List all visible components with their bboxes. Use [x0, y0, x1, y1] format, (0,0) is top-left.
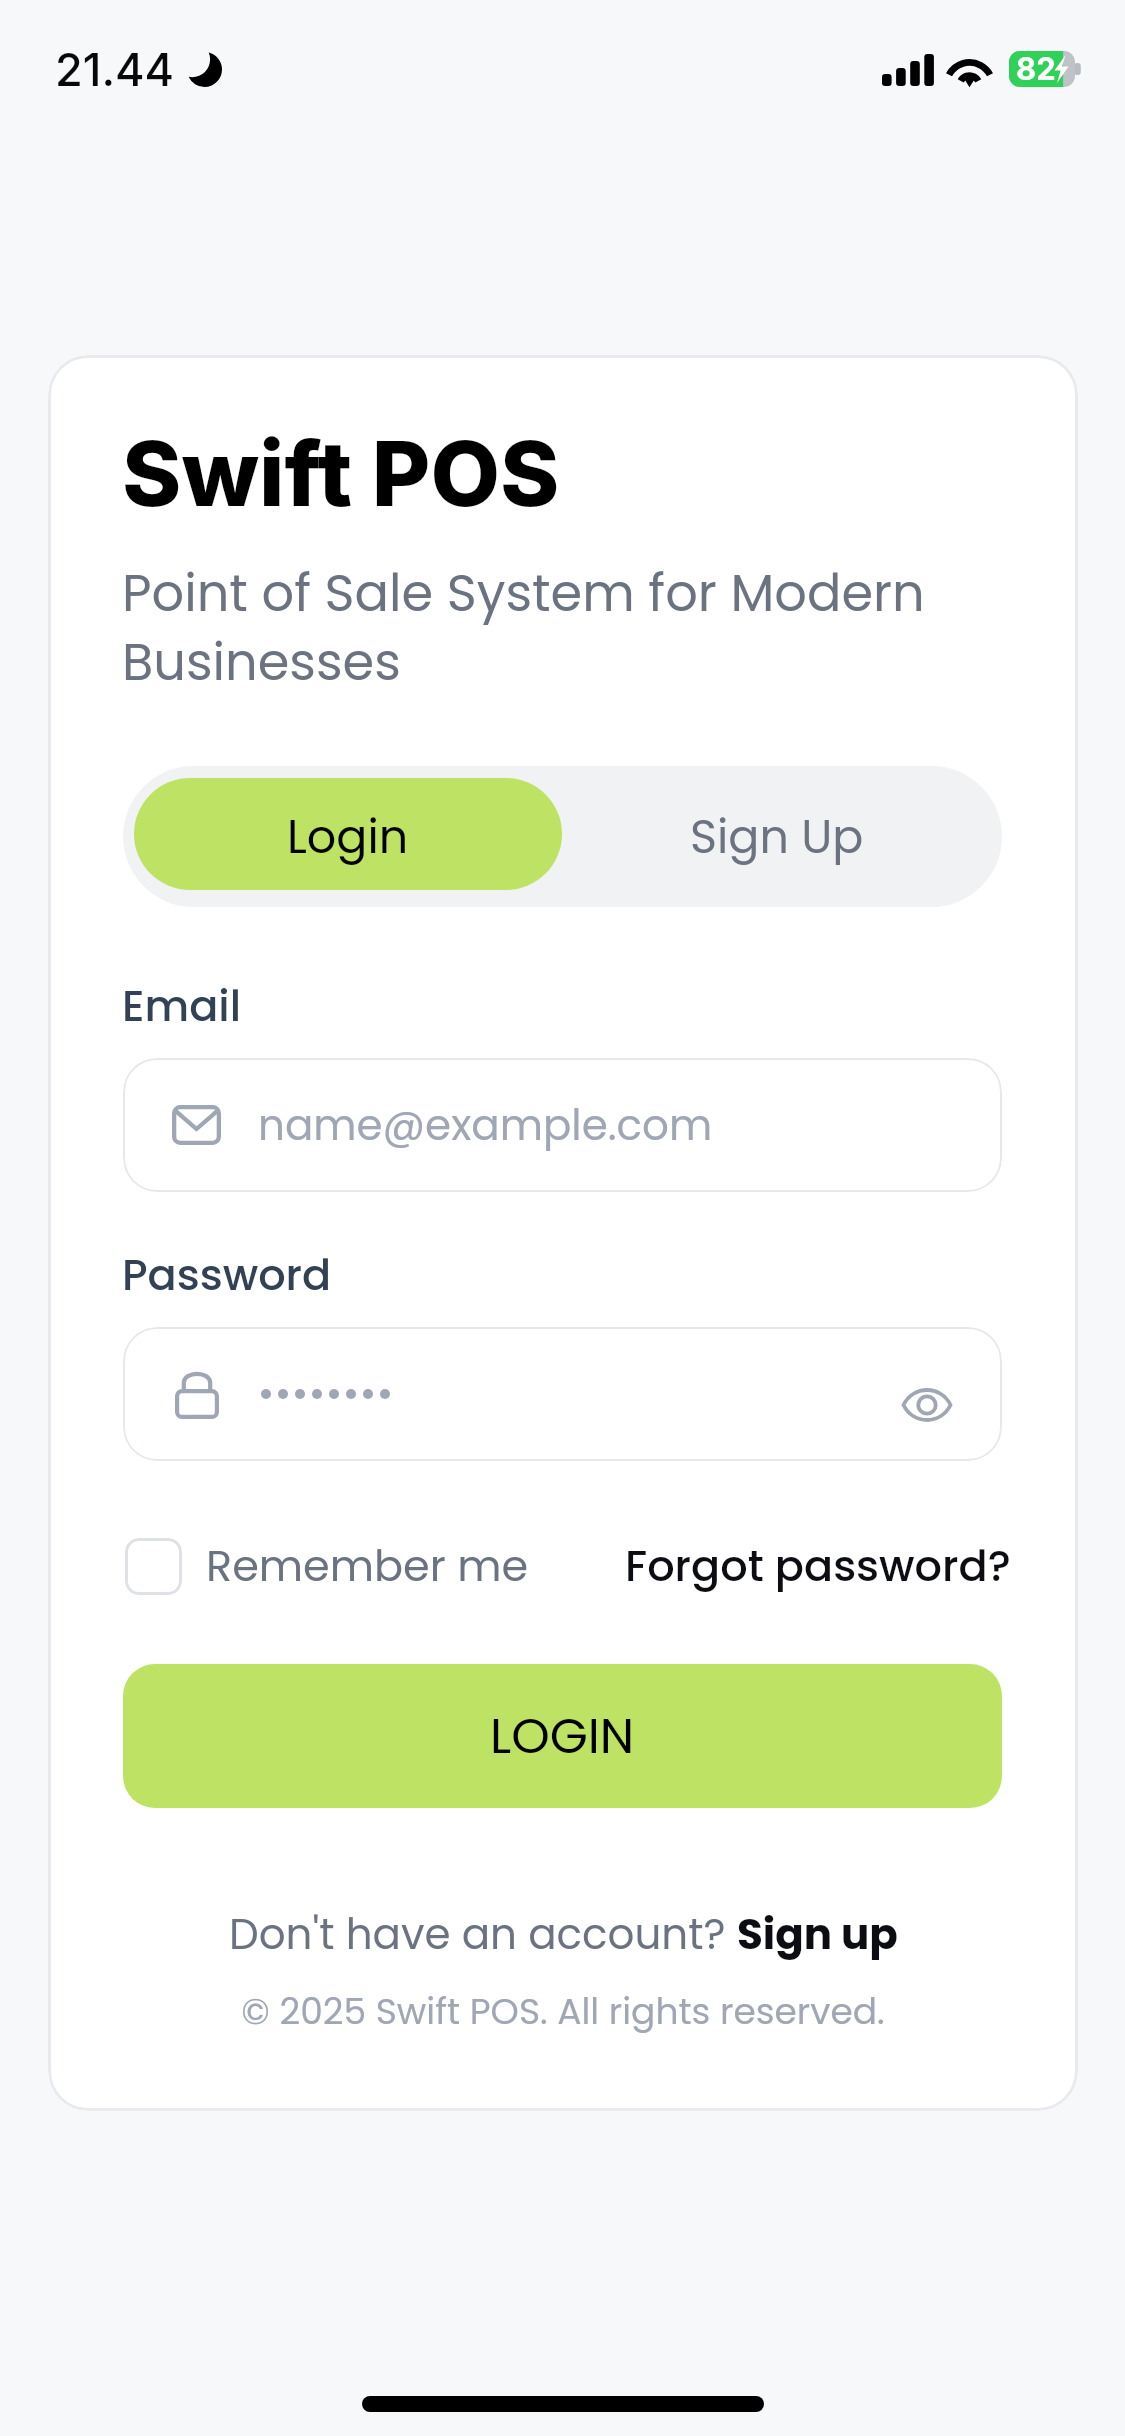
staticText: Sign Up: [690, 805, 864, 869]
staticText: Don't have an account?: [229, 1905, 737, 1964]
staticText: Password: [122, 1245, 332, 1305]
staticText: name@example.com: [258, 1096, 713, 1155]
staticText: Remember me: [206, 1536, 529, 1596]
button[interactable]: name@example.com: [123, 1058, 1002, 1192]
button[interactable]: Show password: [891, 1358, 963, 1430]
staticText: LOGIN: [490, 1702, 635, 1771]
button[interactable]: LOGIN: [123, 1664, 1002, 1808]
button[interactable]: Show password: [123, 1327, 1002, 1461]
staticText: © 2025 Swift POS. All rights reserved.: [48, 1986, 1078, 2036]
staticText: Email: [122, 976, 242, 1036]
button[interactable]: Sign Up: [562, 778, 991, 890]
staticText: Point of Sale System for Modern Business…: [122, 557, 925, 697]
button[interactable]: Remember me: [125, 1538, 182, 1595]
staticText: 82: [1016, 50, 1056, 88]
staticText: Swift POS: [122, 419, 560, 528]
button[interactable]: Forgot password?: [625, 1536, 1011, 1596]
staticText: 21.44: [55, 42, 175, 96]
button[interactable]: Sign up: [737, 1905, 898, 1964]
button[interactable]: Login: [134, 778, 562, 890]
staticText: Login: [287, 805, 409, 869]
